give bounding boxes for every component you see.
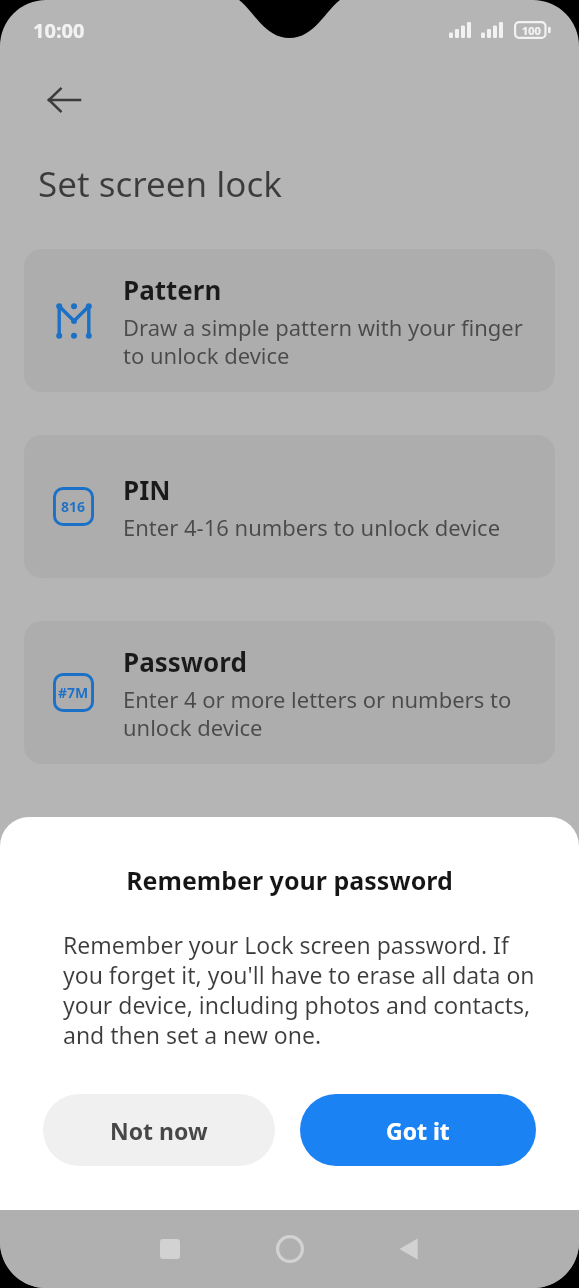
button[interactable]: Home: [254, 1213, 326, 1285]
button[interactable]: Back: [26, 62, 102, 138]
staticText: Remember your Lock screen password. If y…: [63, 929, 543, 1050]
button[interactable]: Back: [374, 1213, 446, 1285]
staticText: #7M: [58, 683, 89, 702]
staticText: Got it: [386, 1115, 450, 1146]
button[interactable]: Pattern: [24, 249, 555, 392]
staticText: 100: [522, 23, 541, 38]
button[interactable]: 816: [24, 435, 555, 578]
button[interactable]: Not now: [43, 1094, 275, 1166]
staticText: 10:00: [33, 17, 85, 44]
button[interactable]: #7M: [24, 621, 555, 764]
staticText: 816: [61, 497, 86, 516]
staticText: Pattern: [123, 272, 222, 307]
staticText: Enter 4 or more letters or numbers to un…: [123, 684, 533, 742]
staticText: Draw a simple pattern with your finger t…: [123, 312, 533, 370]
staticText: Remember your password: [0, 863, 579, 897]
staticText: Set screen lock: [38, 160, 282, 208]
staticText: Password: [123, 644, 247, 679]
button[interactable]: Got it: [300, 1094, 536, 1166]
staticText: PIN: [123, 472, 171, 507]
staticText: Enter 4-16 numbers to unlock device: [123, 512, 501, 542]
button[interactable]: Recent apps: [134, 1213, 206, 1285]
staticText: Not now: [110, 1115, 208, 1146]
